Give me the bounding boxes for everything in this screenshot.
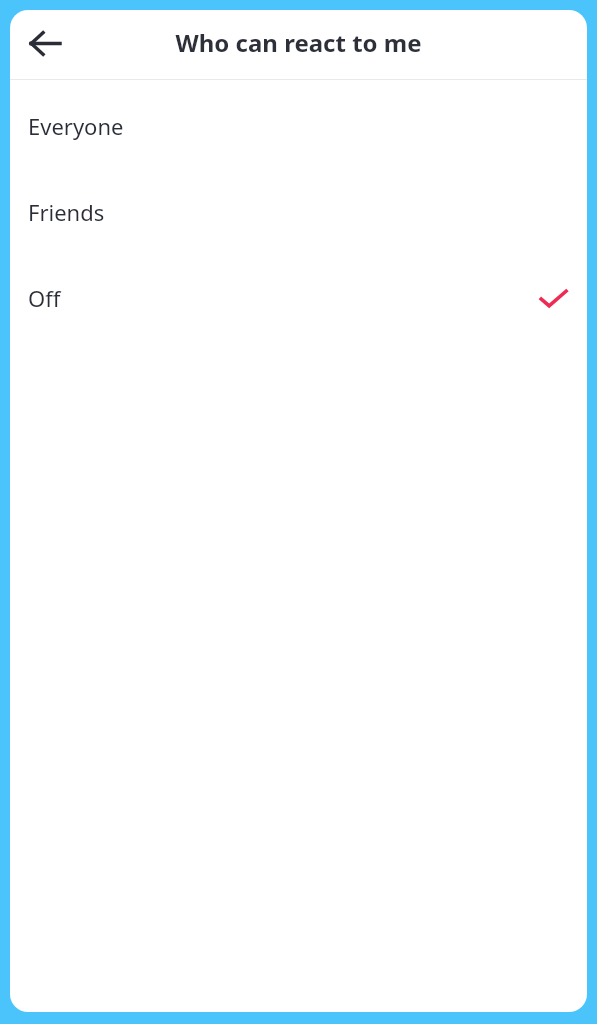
- staticText: Friends: [28, 197, 105, 227]
- button[interactable]: Everyone: [10, 83, 587, 169]
- button[interactable]: Friends: [10, 169, 587, 255]
- staticText: Everyone: [28, 111, 124, 141]
- staticText: Off: [28, 283, 61, 313]
- staticText: Who can react to me: [175, 26, 422, 59]
- button[interactable]: Off: [10, 255, 587, 341]
- button[interactable]: Back: [18, 16, 72, 70]
